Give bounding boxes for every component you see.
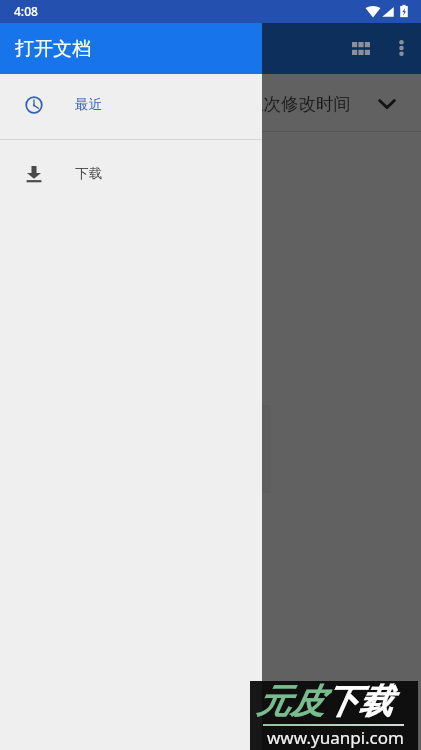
staticText: 打开文档 (15, 37, 91, 61)
staticText: www.yuanpi.com (267, 726, 404, 749)
staticText: 最近 (75, 96, 102, 113)
staticText: 下载 (324, 680, 392, 723)
button[interactable]: More options (377, 24, 421, 72)
staticText: 下载 (75, 165, 102, 182)
button[interactable]: 下载 (0, 149, 262, 199)
button[interactable]: Grid view (337, 25, 385, 73)
staticText: 元皮 (256, 680, 324, 723)
button[interactable]: 上次修改时间 (246, 75, 397, 132)
button[interactable]: 最近 (0, 80, 262, 130)
staticText: 上次修改时间 (246, 93, 351, 115)
staticText: 4:08 (14, 3, 38, 19)
